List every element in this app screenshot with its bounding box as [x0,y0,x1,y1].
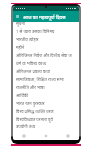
staticText: ओरिजनल प्रकाश कथा [16,69,51,75]
button[interactable]: Back [13,132,35,140]
staticText: सामाजिकता, शिक्षित राज्य सभा [16,77,64,83]
button[interactable]: राजनीति और भाषा [13,84,79,92]
staticText: विश्व प्रसिद्ध व्यक्ति चरण [16,109,54,115]
button[interactable]: Recents [57,132,79,140]
button[interactable]: भारत रतन पुरस्कार [13,100,79,108]
staticText: भारतीय त्योहार [16,37,39,43]
button[interactable]: ओरिजिनल निवेश और वित्तीय सेवा ज [13,52,79,60]
button[interactable]: सामाजिकता, शिक्षित राज्य सभा [13,76,79,84]
staticText: आज का महत्वपूर्ण दिवस [23,14,66,20]
staticText: उपयोगी तथ्य [16,124,36,130]
staticText: महीने [16,45,25,51]
staticText: भारत रतन पुरस्कार [16,101,45,107]
button[interactable]: 1 से प्यारा उसका विनिमय [13,28,79,36]
button[interactable]: Menu [15,14,20,19]
button[interactable]: विश्वविख्यात परम्परा पूर्व [13,116,79,124]
button[interactable]: महीने [13,44,79,52]
staticText: ओरिजिनल निवेश और वित्तीय सेवा ज [16,53,72,59]
button[interactable]: विश्व प्रसिद्ध व्यक्ति चरण [13,108,79,116]
staticText: धर्म या भविष्य काव्य [16,61,47,67]
button[interactable]: Home [35,132,57,140]
button[interactable]: धर्म या भविष्य काव्य [13,60,79,68]
staticText: विश्वविख्यात परम्परा पूर्व [16,117,53,123]
staticText: राजनीति और भाषा [16,85,45,91]
staticText: सूचना [16,22,25,27]
button[interactable]: सूचना [13,22,79,28]
button[interactable]: ओरिजनल प्रकाश कथा [13,68,79,76]
button[interactable]: उपयोगी तथ्य [13,124,79,130]
staticText: 1 से प्यारा उसका विनिमय [16,29,55,35]
staticText: आर्थिकी [16,93,29,99]
button[interactable]: आर्थिकी [13,92,79,100]
button[interactable]: भारतीय त्योहार [13,36,79,44]
